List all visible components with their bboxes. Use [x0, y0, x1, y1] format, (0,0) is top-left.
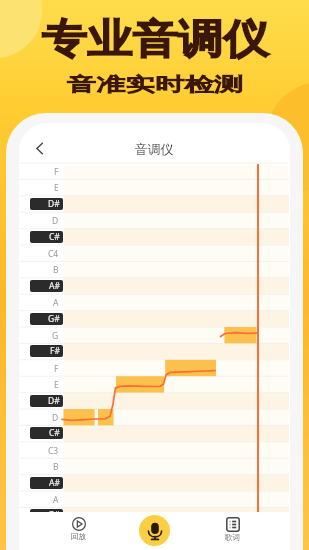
staticText: B: [53, 461, 59, 473]
button[interactable]: 回放: [53, 512, 103, 550]
staticText: E: [54, 379, 59, 391]
button[interactable]: 歌词: [207, 512, 257, 550]
staticText: F: [54, 166, 59, 178]
staticText: 专业音调仪: [42, 15, 268, 66]
staticText: D: [52, 412, 59, 424]
staticText: A#: [49, 280, 60, 292]
staticText: D#: [48, 395, 60, 407]
staticText: B: [53, 264, 59, 276]
staticText: F: [54, 363, 59, 375]
button[interactable]: Record: [129, 512, 179, 550]
staticText: G#: [48, 313, 60, 325]
staticText: 音准实时检测: [67, 73, 243, 97]
staticText: A: [53, 297, 59, 309]
button[interactable]: Back: [26, 135, 52, 161]
staticText: C#: [49, 231, 60, 243]
staticText: C3: [48, 445, 59, 457]
staticText: G: [52, 330, 59, 342]
staticText: E: [54, 182, 59, 194]
staticText: F#: [50, 345, 60, 357]
staticText: C4: [48, 248, 59, 260]
staticText: G#: [48, 509, 60, 512]
staticText: C#: [49, 427, 60, 439]
staticText: 歌词: [225, 533, 240, 542]
staticText: D: [52, 215, 59, 227]
staticText: 回放: [71, 532, 86, 541]
staticText: A#: [49, 477, 60, 489]
staticText: D#: [48, 198, 60, 210]
staticText: 音调仪: [19, 141, 289, 157]
staticText: A: [53, 494, 59, 506]
